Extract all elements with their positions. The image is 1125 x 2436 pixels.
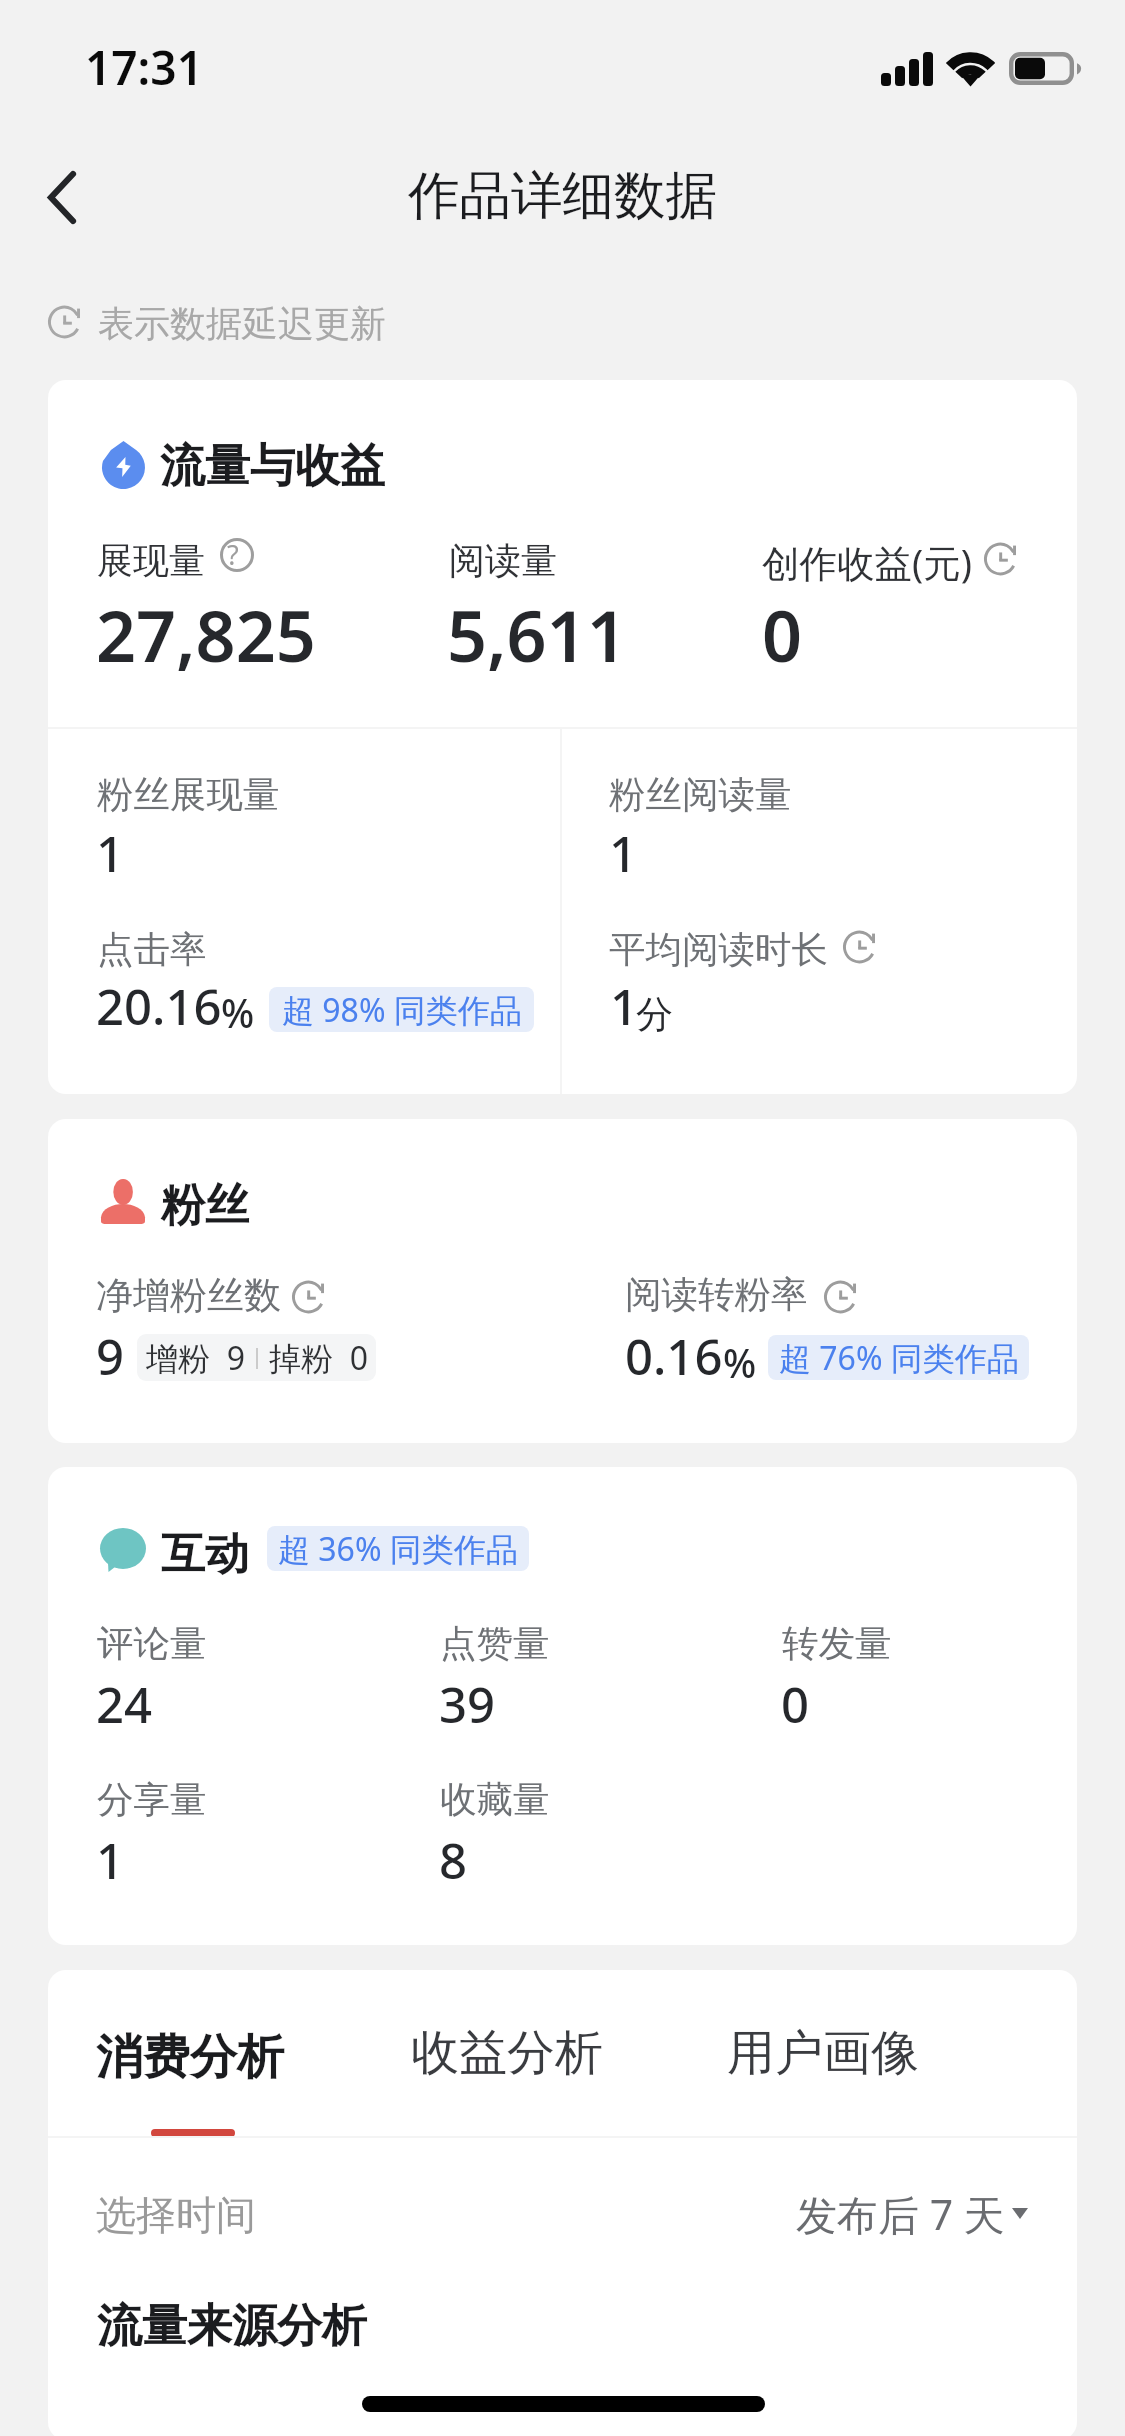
staticText: 创作收益(元) <box>762 537 972 588</box>
staticText: 24 <box>96 1671 153 1738</box>
staticText: 0 <box>762 587 803 682</box>
staticText: 作品详细数据 <box>408 163 717 228</box>
staticText: 1 <box>609 820 638 887</box>
staticText: 粉丝 <box>161 1178 249 1233</box>
staticText: 8 <box>439 1827 468 1894</box>
staticText: 分 <box>636 991 673 1038</box>
staticText: 27,825 <box>96 587 316 682</box>
staticText: 阅读转粉率 <box>625 1272 808 1318</box>
staticText: 1 <box>96 1827 125 1894</box>
staticText: 5,611 <box>447 587 627 682</box>
staticText: 展现量 <box>97 538 205 583</box>
staticText: 点赞量 <box>440 1621 550 1667</box>
staticText: 1 <box>96 820 125 887</box>
staticText: 0 <box>781 1671 810 1738</box>
button[interactable]: 发布后 7 天 <box>781 2172 1041 2260</box>
staticText: % <box>723 1336 757 1389</box>
staticText: 掉粉 0 <box>269 1336 368 1380</box>
staticText: 净增粉丝数 <box>96 1272 281 1319</box>
staticText: 增粉 9 <box>146 1336 245 1380</box>
staticText: % <box>221 986 255 1039</box>
staticText: 平均阅读时长 <box>609 927 828 973</box>
staticText: 转发量 <box>782 1621 892 1667</box>
staticText: 评论量 <box>97 1621 207 1667</box>
staticText: 表示数据延迟更新 <box>98 301 386 346</box>
staticText: 0.16 <box>625 1323 723 1390</box>
staticText: 点击率 <box>97 927 207 973</box>
staticText: 9 <box>96 1323 125 1390</box>
staticText: 阅读量 <box>449 538 557 583</box>
staticText: 收藏量 <box>440 1777 550 1823</box>
staticText: 粉丝展现量 <box>97 772 280 818</box>
button[interactable]: 收益分析 <box>376 2002 642 2136</box>
staticText: 超 76% 同类作品 <box>779 1336 1019 1380</box>
staticText: 粉丝阅读量 <box>609 772 792 818</box>
button[interactable]: Back <box>14 143 118 247</box>
staticText: 消费分析 <box>96 2028 284 2087</box>
staticText: 分享量 <box>97 1777 207 1823</box>
staticText: 发布后 7 天 <box>796 2186 1005 2242</box>
staticText: 选择时间 <box>96 2190 256 2240</box>
staticText: 超 36% 同类作品 <box>278 1527 518 1571</box>
staticText: 流量来源分析 <box>97 2298 367 2355</box>
staticText: 流量与收益 <box>160 438 385 495</box>
staticText: 39 <box>439 1671 496 1738</box>
button[interactable]: 消费分析 <box>60 2002 326 2136</box>
staticText: ? <box>227 536 239 573</box>
staticText: 收益分析 <box>411 2023 603 2083</box>
staticText: 用户画像 <box>727 2023 919 2083</box>
staticText: 互动 <box>161 1527 249 1582</box>
button[interactable]: 用户画像 <box>692 2002 958 2136</box>
staticText: 超 98% 同类作品 <box>282 988 522 1032</box>
staticText: 20.16 <box>96 973 222 1040</box>
staticText: 17:31 <box>85 36 203 99</box>
staticText: 1 <box>610 973 639 1040</box>
